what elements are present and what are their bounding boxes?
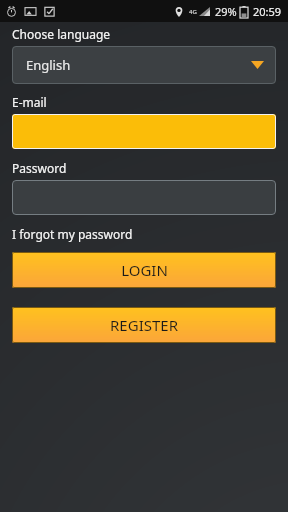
staticText: LOGIN: [121, 260, 168, 280]
button[interactable]: English: [12, 46, 276, 84]
button[interactable]: [12, 114, 276, 149]
staticText: REGISTER: [110, 315, 178, 335]
staticText: 20:59: [253, 4, 282, 19]
button[interactable]: REGISTER: [12, 307, 276, 343]
button[interactable]: [12, 180, 276, 215]
button[interactable]: LOGIN: [12, 252, 276, 288]
staticText: 29%: [215, 4, 237, 19]
staticText: I forgot my password: [12, 226, 133, 242]
staticText: 4G: [189, 8, 197, 16]
staticText: E-mail: [12, 94, 47, 110]
staticText: Password: [12, 160, 67, 176]
button[interactable]: I forgot my password: [12, 226, 133, 242]
staticText: Choose language: [12, 26, 111, 42]
staticText: English: [26, 56, 71, 74]
